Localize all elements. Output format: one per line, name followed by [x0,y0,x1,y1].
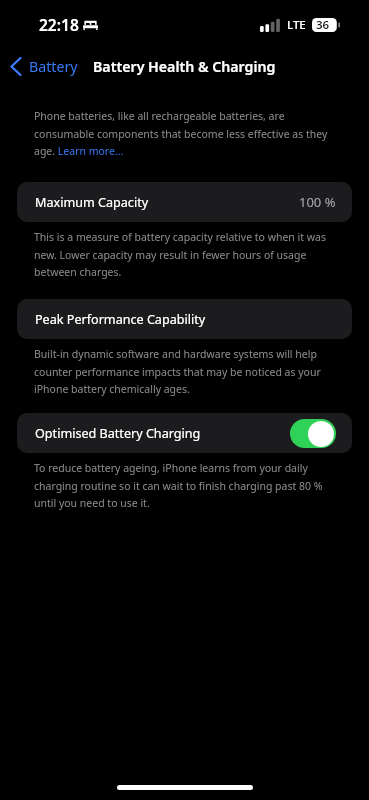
staticText: This is a measure of battery capacity re… [34,230,337,279]
staticText: LTE [287,17,306,33]
button[interactable]: Learn more [58,143,124,156]
staticText: Phone batteries, like all rechargeable b… [34,109,337,158]
staticText: Optimised Battery Charging [35,425,201,442]
button[interactable]: Battery [11,57,78,76]
button[interactable]: Optimised Battery Charging toggle [290,419,336,448]
button[interactable]: Peak Performance Capability [17,299,352,339]
staticText: Battery Health & Charging [93,57,276,76]
staticText: Built-in dynamic software and hardware s… [34,347,337,396]
staticText: 22:18 [39,14,79,35]
staticText: Peak Performance Capability [35,311,206,328]
staticText: Maximum Capacity [35,194,149,211]
button[interactable]: Optimised Battery Charging [17,413,352,453]
staticText: To reduce battery ageing, iPhone learns … [34,461,337,510]
staticText: 100 % [299,193,336,211]
staticText: Battery [29,57,78,76]
staticText: 36 [316,17,330,33]
button[interactable]: Maximum Capacity [17,182,352,222]
